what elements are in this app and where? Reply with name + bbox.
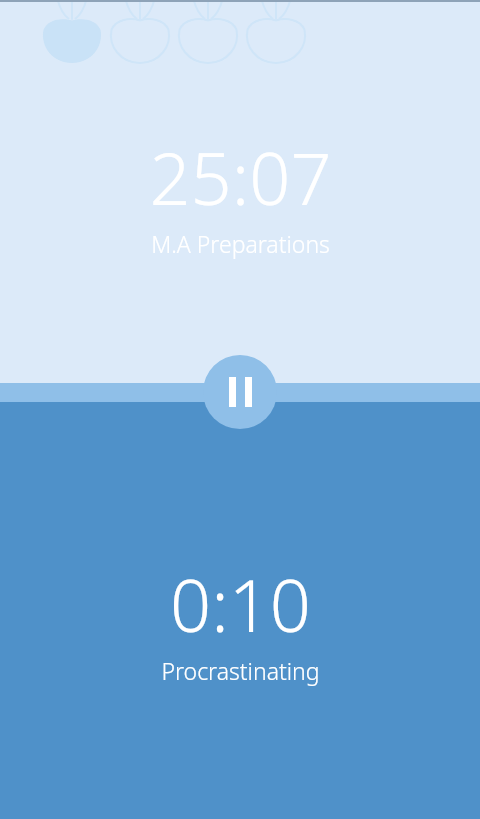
button[interactable]: Pause: [203, 355, 277, 429]
staticText: Procrastinating: [161, 655, 320, 686]
staticText: 25:07: [149, 128, 332, 226]
staticText: 0:10: [170, 555, 311, 653]
staticText: M.A Preparations: [151, 228, 330, 259]
